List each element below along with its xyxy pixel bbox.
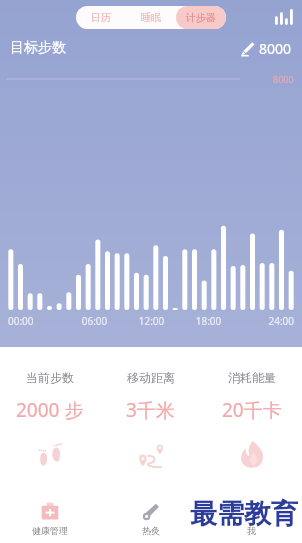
staticText: 消耗能量 — [228, 370, 276, 385]
staticText: 12:00 — [123, 314, 180, 328]
staticText: 00:00 — [8, 314, 66, 328]
button[interactable]: Statistics — [268, 0, 302, 34]
staticText: 当前步数 — [26, 370, 74, 385]
staticText: 8000 — [273, 73, 294, 85]
staticText: 日历 — [91, 11, 111, 24]
staticText: 我 — [247, 525, 256, 536]
staticText: 18:00 — [180, 314, 237, 328]
staticText: 目标步数 — [10, 39, 66, 57]
button[interactable]: 当前步数 — [0, 370, 100, 423]
staticText: 健康管理 — [32, 525, 68, 536]
button[interactable]: 我 — [201, 497, 302, 543]
button[interactable]: 睡眠 — [126, 6, 176, 29]
staticText: 最需教育 — [190, 497, 298, 531]
button[interactable]: 热灸 — [100, 497, 201, 543]
staticText: 20千卡 — [222, 397, 282, 423]
button[interactable]: 消耗能量 — [201, 370, 302, 423]
staticText: 24:00 — [237, 314, 294, 328]
button[interactable]: 日历 — [76, 6, 126, 29]
button[interactable]: 计步器 — [176, 6, 226, 29]
staticText: 移动距离 — [127, 370, 175, 385]
staticText: 06:00 — [66, 314, 123, 328]
staticText: 热灸 — [142, 525, 160, 536]
staticText: 3千米 — [126, 397, 175, 423]
button[interactable]: 健康管理 — [0, 497, 100, 543]
staticText: 2000 步 — [16, 397, 84, 423]
button[interactable]: 移动距离 — [100, 370, 201, 423]
staticText: 睡眠 — [141, 11, 161, 24]
staticText: 8000 — [259, 39, 292, 58]
staticText: 计步器 — [186, 11, 216, 24]
button[interactable]: 8000 — [240, 39, 292, 58]
